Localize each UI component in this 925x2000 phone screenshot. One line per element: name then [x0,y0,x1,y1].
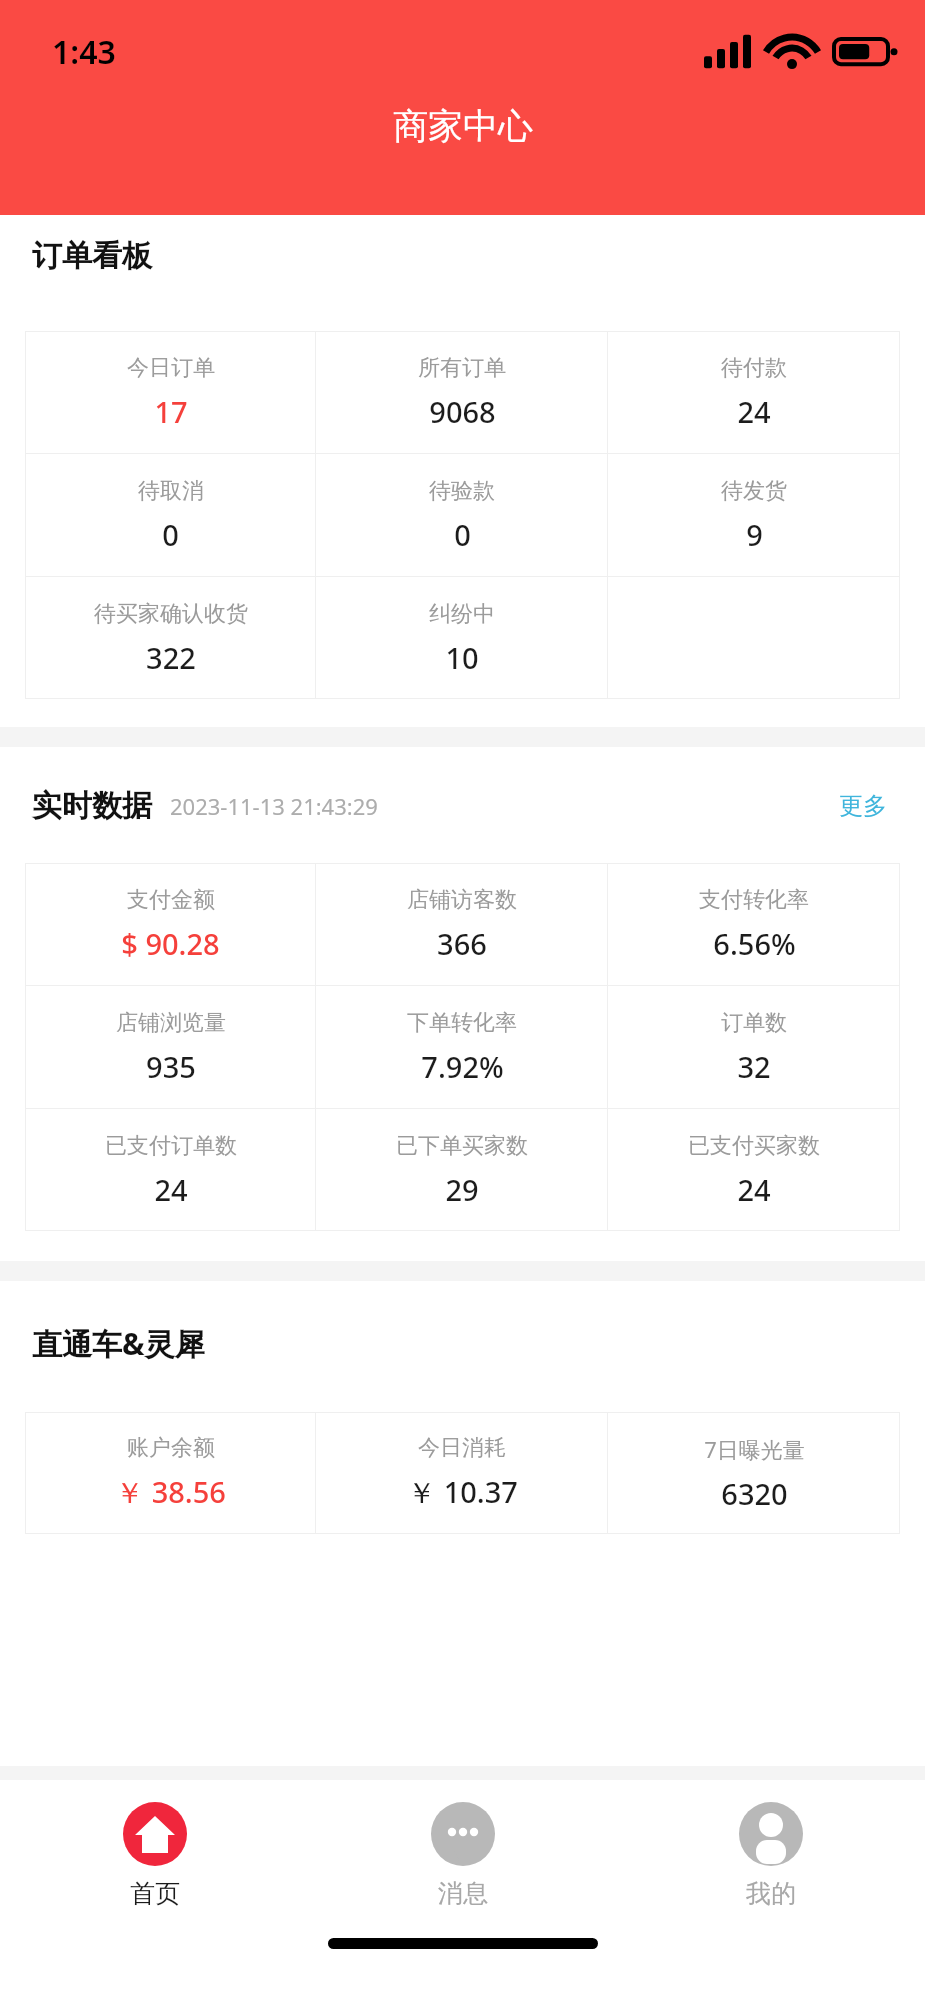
button[interactable]: 支付转化率 [608,863,900,985]
staticText: 0 [454,515,471,554]
button[interactable]: 更多 [833,785,893,827]
staticText: ￥ 38.56 [115,1472,226,1512]
staticText: 已下单买家数 [396,1132,528,1160]
button[interactable]: 订单数 [608,986,900,1108]
staticText: 商家中心 [393,104,533,148]
button[interactable]: 首页 [0,1780,309,1930]
staticText: 所有订单 [418,354,506,382]
button[interactable]: 店铺浏览量 [25,986,316,1108]
staticText: 322 [146,638,196,677]
staticText: 已支付订单数 [105,1132,237,1160]
button[interactable]: 已支付买家数 [608,1109,900,1231]
staticText: 我的 [746,1878,796,1909]
staticText: 纠纷中 [429,600,495,628]
button[interactable]: 7日曝光量 [608,1412,900,1534]
button[interactable]: 已支付订单数 [25,1109,316,1231]
button[interactable]: 待取消 [25,454,316,576]
button[interactable]: 店铺访客数 [316,863,608,985]
staticText: 今日消耗 [418,1434,506,1462]
button[interactable]: 账户余额 [25,1412,316,1534]
staticText: 17 [154,392,188,431]
staticText: 24 [737,1170,771,1209]
button[interactable]: 下单转化率 [316,986,608,1108]
staticText: 店铺访客数 [407,886,517,914]
staticText: 待验款 [429,477,495,505]
button[interactable]: 已下单买家数 [316,1109,608,1231]
staticText: 今日订单 [127,354,215,382]
button[interactable]: 待买家确认收货 [25,577,316,699]
staticText: 10 [445,638,479,677]
staticText: 店铺浏览量 [116,1009,226,1037]
staticText: 消息 [438,1878,488,1909]
staticText: 订单数 [721,1009,787,1037]
staticText: 24 [737,392,771,431]
staticText: 待取消 [138,477,204,505]
staticText: ￥ 10.37 [407,1472,518,1512]
staticText: 7日曝光量 [704,1434,805,1464]
button[interactable]: 待付款 [608,331,900,453]
staticText: 待买家确认收货 [94,600,248,628]
staticText: 6.56% [713,924,796,963]
button[interactable]: 支付金额 [25,863,316,985]
staticText: 935 [146,1047,196,1086]
staticText: 账户余额 [127,1434,215,1462]
staticText: 7.92% [421,1047,504,1086]
staticText: 实时数据 [32,787,152,825]
button[interactable]: 今日订单 [25,331,316,453]
button[interactable]: 今日消耗 [316,1412,608,1534]
staticText: 更多 [839,791,887,821]
staticText: 已支付买家数 [688,1132,820,1160]
staticText: 366 [437,924,487,963]
staticText: 6320 [721,1474,788,1513]
staticText: 0 [162,515,179,554]
staticText: 9 [746,515,763,554]
staticText: 29 [445,1170,479,1209]
staticText: 支付金额 [127,886,215,914]
staticText: 1:43 [52,30,116,74]
staticText: 2023-11-13 21:43:29 [170,791,378,821]
staticText: 直通车&灵犀 [32,1323,205,1364]
button[interactable]: 所有订单 [316,331,608,453]
button[interactable]: 待验款 [316,454,608,576]
button[interactable]: 纠纷中 [316,577,608,699]
staticText: 待发货 [721,477,787,505]
staticText: 24 [154,1170,188,1209]
staticText: 下单转化率 [407,1009,517,1037]
staticText: 9068 [429,392,496,431]
staticText: 32 [737,1047,771,1086]
button[interactable]: 消息 [309,1780,617,1930]
button[interactable]: 我的 [617,1780,925,1930]
staticText: 待付款 [721,354,787,382]
staticText: 订单看板 [32,237,152,275]
staticText: 支付转化率 [699,886,809,914]
staticText: $ 90.28 [121,924,220,963]
button[interactable]: 待发货 [608,454,900,576]
staticText: 首页 [130,1878,180,1909]
